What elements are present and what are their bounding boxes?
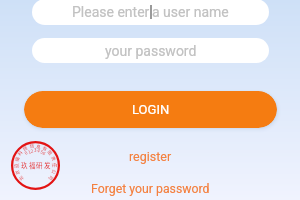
button[interactable]: your password xyxy=(32,38,269,63)
staticText: your password xyxy=(105,43,197,59)
other: Company seal xyxy=(11,141,60,190)
staticText: Forget your password xyxy=(91,182,210,196)
button[interactable]: LOGIN xyxy=(24,91,277,128)
staticText: a user name xyxy=(152,4,229,20)
button[interactable]: Please enter xyxy=(32,0,269,25)
staticText: register xyxy=(129,149,172,164)
button[interactable]: register xyxy=(118,147,183,166)
staticText: Please enter xyxy=(72,4,150,20)
staticText: LOGIN xyxy=(132,102,170,117)
button[interactable]: Forget your password xyxy=(85,179,216,198)
